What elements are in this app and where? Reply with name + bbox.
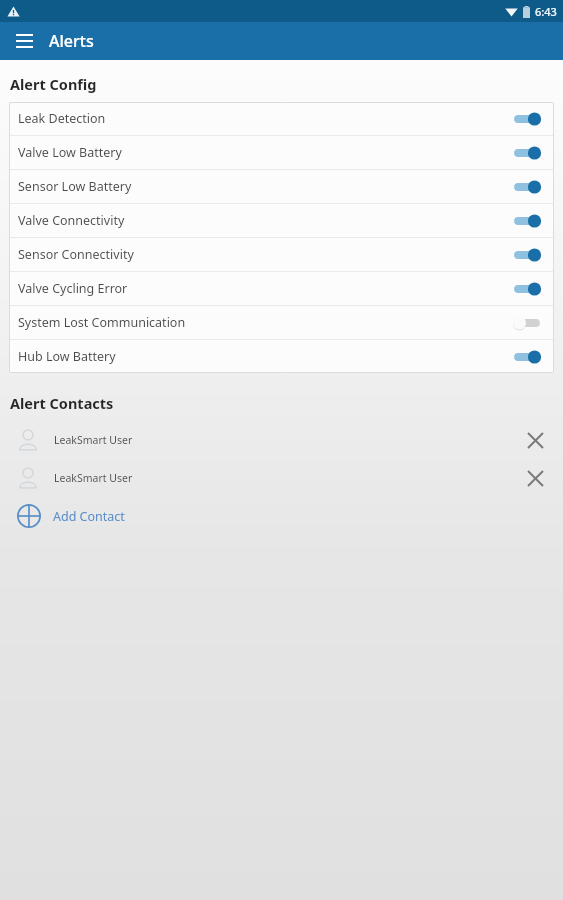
button[interactable]: Disabled toggle <box>510 313 544 333</box>
staticText: Sensor Low Battery <box>18 178 510 195</box>
button[interactable]: Sensor Connectivity <box>9 238 554 271</box>
staticText: Add Contact <box>53 508 125 525</box>
staticText: 6:43 <box>535 4 557 19</box>
button[interactable]: Add Contact <box>0 497 563 535</box>
staticText: Alert Contacts <box>10 393 114 413</box>
staticText: Alerts <box>49 30 94 52</box>
button[interactable]: Enabled toggle <box>510 211 544 231</box>
button[interactable]: System Lost Communication <box>9 306 554 339</box>
staticText: LeakSmart User <box>54 433 521 447</box>
staticText: LeakSmart User <box>54 471 521 485</box>
staticText: Valve Cycling Error <box>18 280 510 297</box>
button[interactable]: LeakSmart User <box>0 459 563 497</box>
staticText: Sensor Connectivity <box>18 246 510 263</box>
staticText: System Lost Communication <box>18 314 510 331</box>
button[interactable]: Remove contact LeakSmart User <box>521 464 549 492</box>
button[interactable]: Enabled toggle <box>510 177 544 197</box>
button[interactable]: Enabled toggle <box>510 245 544 265</box>
button[interactable]: Hub Low Battery <box>9 340 554 373</box>
button[interactable]: Leak Detection <box>9 102 554 135</box>
button[interactable]: Enabled toggle <box>510 109 544 129</box>
button[interactable]: Enabled toggle <box>510 279 544 299</box>
staticText: Hub Low Battery <box>18 348 510 365</box>
button[interactable]: Valve Connectivity <box>9 204 554 237</box>
staticText: Valve Low Battery <box>18 144 510 161</box>
staticText: Alert Config <box>10 74 97 94</box>
button[interactable]: Remove contact LeakSmart User <box>521 426 549 454</box>
button[interactable]: Open navigation menu <box>11 28 37 54</box>
button[interactable]: Valve Low Battery <box>9 136 554 169</box>
button[interactable]: Enabled toggle <box>510 143 544 163</box>
button[interactable]: Enabled toggle <box>510 347 544 367</box>
button[interactable]: LeakSmart User <box>0 421 563 459</box>
staticText: Valve Connectivity <box>18 212 510 229</box>
staticText: Leak Detection <box>18 110 510 127</box>
button[interactable]: Sensor Low Battery <box>9 170 554 203</box>
button[interactable]: Valve Cycling Error <box>9 272 554 305</box>
